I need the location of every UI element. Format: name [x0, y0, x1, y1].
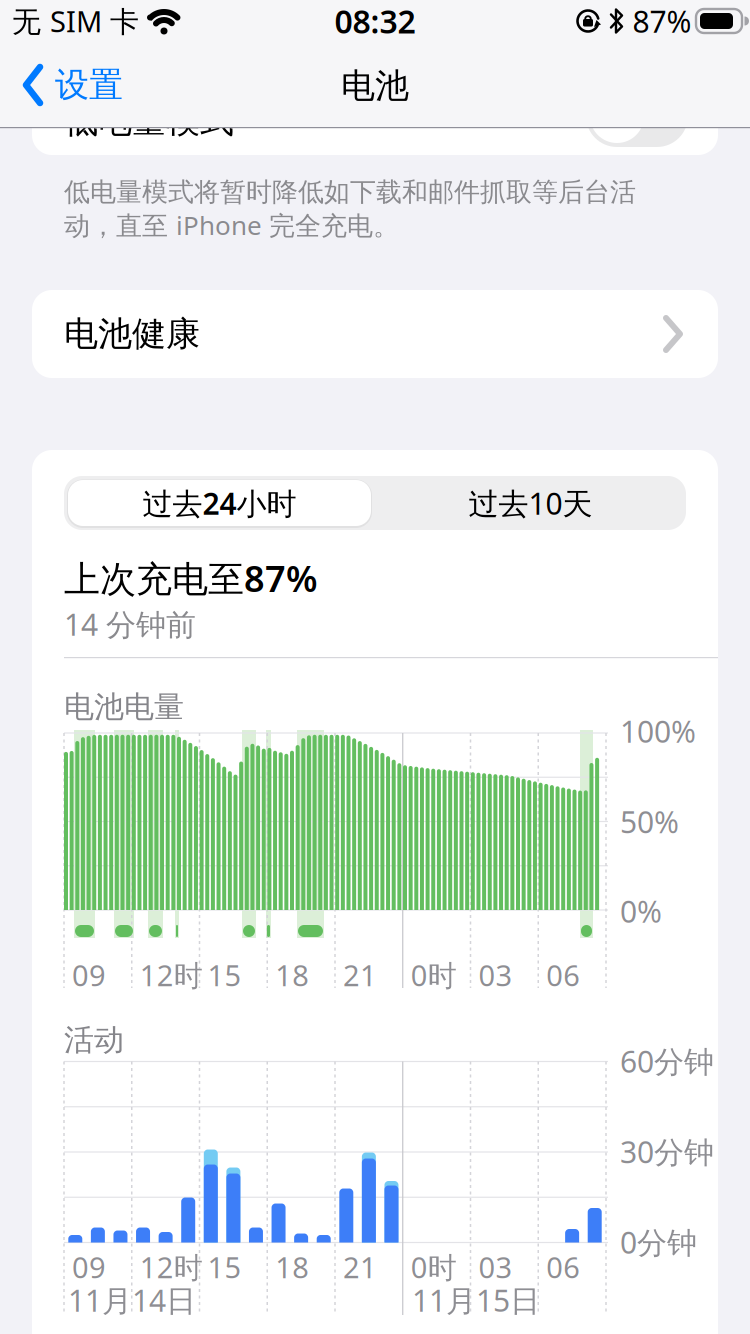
staticText: 活动 — [64, 1022, 124, 1058]
staticText: 09 — [72, 1248, 106, 1286]
staticText: 06 — [546, 1248, 580, 1286]
staticText: 18 — [275, 1248, 309, 1286]
staticText: 电池健康 — [64, 313, 200, 355]
button[interactable]: 低电量模式 — [32, 67, 718, 155]
staticText: 21 — [343, 1248, 377, 1286]
staticText: 12时 — [140, 1248, 203, 1286]
button[interactable]: 设置 — [23, 50, 123, 120]
staticText: 0分钟 — [620, 1222, 697, 1262]
staticText: 过去24小时 — [142, 483, 296, 523]
staticText: 03 — [478, 1248, 512, 1286]
staticText: 08:32 — [334, 0, 415, 42]
staticText: 30分钟 — [620, 1132, 714, 1171]
staticText: 过去10天 — [468, 483, 592, 523]
staticText: 09 — [72, 956, 106, 994]
staticText: 21 — [343, 956, 377, 994]
button[interactable]: 过去10天 — [379, 480, 682, 526]
staticText: 0时 — [411, 1248, 457, 1286]
staticText: 06 — [546, 956, 580, 994]
staticText: 低电量模式将暂时降低如下载和邮件抓取等后台活 — [64, 176, 636, 208]
staticText: 上次充电至87% — [64, 554, 318, 602]
button[interactable]: 电池健康 — [32, 290, 718, 378]
staticText: 87% — [632, 1, 691, 41]
staticText: 0% — [620, 891, 662, 931]
staticText: 15 — [207, 956, 241, 994]
staticText: 18 — [275, 956, 309, 994]
staticText: 动，直至 iPhone 完全充电。 — [64, 208, 399, 242]
staticText: 无 SIM 卡 — [12, 2, 139, 40]
button[interactable]: 过去24小时 — [68, 480, 371, 526]
staticText: 03 — [478, 956, 512, 994]
staticText: 0时 — [411, 956, 457, 994]
staticText: 低电量模式 — [64, 100, 234, 142]
staticText: 电池 — [341, 65, 409, 107]
staticText: 14 分钟前 — [64, 604, 196, 644]
staticText: 50% — [620, 802, 679, 841]
staticText: 100% — [620, 711, 696, 751]
staticText: 11月14日 — [68, 1280, 196, 1320]
staticText: 电池电量 — [64, 689, 184, 725]
staticText: 11月15日 — [412, 1280, 540, 1320]
staticText: 60分钟 — [620, 1041, 714, 1081]
staticText: 12时 — [140, 956, 203, 994]
staticText: 设置 — [55, 64, 123, 106]
staticText: 15 — [207, 1248, 241, 1286]
